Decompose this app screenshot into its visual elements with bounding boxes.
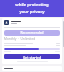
staticText: Recommended [6,31,58,35]
staticText: Get started [4,55,60,59]
button[interactable]: Recommended [2,18,62,64]
staticText: Monthly · Unlimited [4,37,60,41]
button[interactable]: Get started [4,54,60,59]
button[interactable]: Plan option one [2,66,62,71]
staticText: while protecting [2,2,62,8]
staticText: your privacy [2,9,62,15]
button[interactable]: Recommended [4,30,60,36]
